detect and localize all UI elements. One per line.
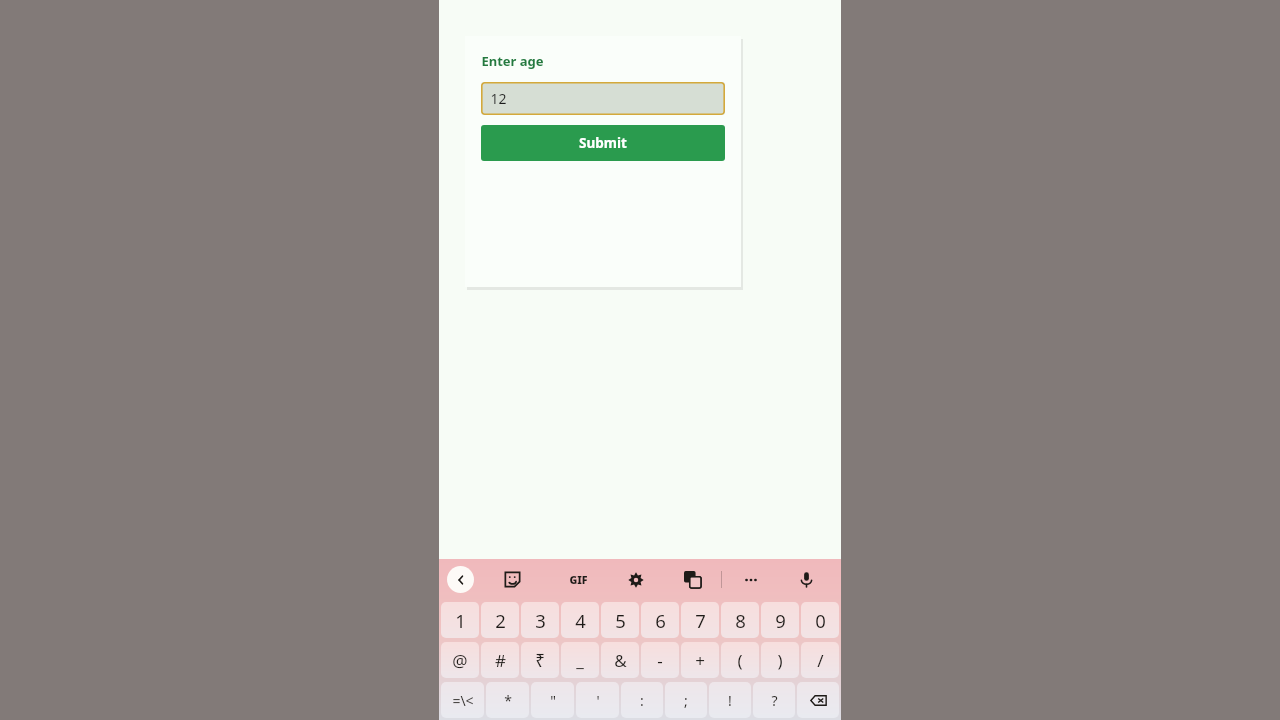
button[interactable]: & [601, 642, 639, 678]
staticText: 8 [735, 608, 746, 633]
button[interactable]: Submit [481, 125, 725, 161]
button[interactable]: - [641, 642, 679, 678]
staticText: 6 [655, 608, 666, 633]
staticText: 7 [695, 608, 706, 633]
button[interactable]: ( [721, 642, 759, 678]
staticText: ' [596, 691, 600, 710]
staticText: " [550, 691, 556, 710]
staticText: + [695, 649, 705, 672]
staticText: ₹ [535, 649, 545, 672]
staticText: - [657, 649, 663, 672]
staticText: 4 [575, 608, 586, 633]
button[interactable]: 4 [561, 602, 599, 638]
button[interactable]: + [681, 642, 719, 678]
button[interactable]: Translate [664, 559, 721, 600]
button[interactable]: 2 [481, 602, 519, 638]
staticText: Enter age [481, 52, 544, 70]
button[interactable]: ) [761, 642, 799, 678]
button[interactable]: / [801, 642, 839, 678]
button[interactable]: ₹ [521, 642, 559, 678]
staticText: 2 [495, 608, 506, 633]
staticText: Submit [579, 134, 627, 152]
button[interactable]: ' [576, 682, 619, 718]
button[interactable]: " [531, 682, 574, 718]
button[interactable]: 3 [521, 602, 559, 638]
button[interactable]: 5 [601, 602, 639, 638]
button[interactable]: 1 [441, 602, 479, 638]
button[interactable]: 8 [721, 602, 759, 638]
staticText: : [640, 691, 644, 710]
staticText: ( [737, 649, 743, 672]
staticText: 1 [455, 608, 466, 633]
staticText: 12 [490, 89, 507, 108]
button[interactable]: ; [665, 682, 707, 718]
button[interactable]: ! [709, 682, 751, 718]
button[interactable]: _ [561, 642, 599, 678]
staticText: _ [576, 649, 584, 672]
button[interactable]: Voice input [779, 559, 833, 600]
button[interactable]: 9 [761, 602, 799, 638]
staticText: & [614, 649, 627, 672]
staticText: * [504, 691, 512, 710]
staticText: ! [728, 691, 732, 710]
staticText: GIF [569, 573, 588, 587]
button[interactable] [797, 682, 839, 718]
staticText: 3 [535, 608, 546, 633]
button[interactable]: =\< [441, 682, 484, 718]
button[interactable]: @ [441, 642, 479, 678]
button[interactable]: More options [722, 559, 779, 600]
staticText: =\< [452, 691, 474, 710]
staticText: ; [684, 691, 688, 710]
button[interactable]: # [481, 642, 519, 678]
staticText: / [817, 649, 824, 672]
staticText: 9 [775, 608, 786, 633]
staticText: @ [452, 649, 468, 672]
button[interactable]: Stickers [474, 559, 550, 600]
staticText: # [495, 649, 506, 672]
staticText: ) [777, 649, 783, 672]
button[interactable]: 7 [681, 602, 719, 638]
button[interactable]: ? [753, 682, 795, 718]
staticText: 0 [815, 608, 826, 633]
staticText: 5 [615, 608, 626, 633]
button[interactable]: * [486, 682, 529, 718]
button[interactable]: : [621, 682, 663, 718]
button[interactable]: 6 [641, 602, 679, 638]
button[interactable]: Settings [607, 559, 664, 600]
button[interactable]: GIF [550, 559, 607, 600]
button[interactable]: 12 [481, 82, 725, 115]
button[interactable]: Back [447, 566, 474, 593]
button[interactable]: 0 [801, 602, 839, 638]
staticText: ? [771, 691, 778, 710]
